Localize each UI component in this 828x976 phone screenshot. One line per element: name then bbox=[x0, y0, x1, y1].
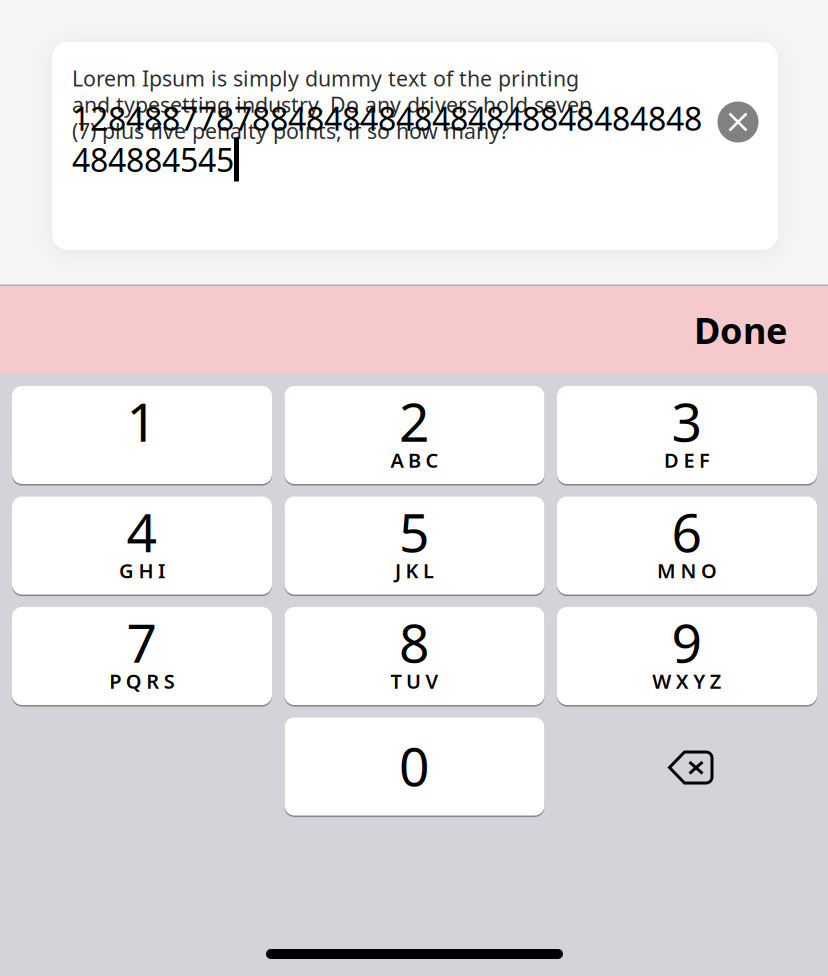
button[interactable]: 4 bbox=[12, 496, 272, 594]
staticText: 2 bbox=[399, 386, 430, 456]
staticText: GHI bbox=[119, 557, 165, 584]
staticText: PQRS bbox=[109, 668, 175, 694]
staticText: 7 bbox=[126, 607, 157, 677]
staticText: JKL bbox=[395, 557, 434, 584]
button[interactable]: 1 bbox=[12, 386, 272, 484]
button[interactable]: Clear text bbox=[706, 90, 770, 154]
button[interactable]: 7 bbox=[12, 607, 272, 705]
staticText: WXYZ bbox=[652, 668, 722, 694]
staticText: 8 bbox=[399, 607, 430, 677]
staticText: MNO bbox=[657, 557, 717, 584]
button[interactable]: 6 bbox=[557, 496, 817, 594]
staticText: 4 bbox=[126, 496, 157, 567]
staticText: 9 bbox=[671, 607, 702, 677]
staticText: 12848877878848484848484848848484848 bbox=[72, 97, 702, 139]
staticText: 3 bbox=[671, 386, 702, 456]
staticText: 6 bbox=[671, 496, 702, 567]
staticText: Done bbox=[694, 306, 787, 354]
staticText: TUV bbox=[390, 668, 438, 694]
button[interactable]: 5 bbox=[284, 496, 544, 594]
button[interactable]: Delete bbox=[557, 717, 817, 815]
staticText: 5 bbox=[399, 496, 430, 567]
button[interactable]: 8 bbox=[284, 607, 544, 705]
staticText: 484884545 bbox=[72, 138, 234, 181]
button[interactable]: 9 bbox=[557, 607, 817, 705]
staticText: DEF bbox=[664, 447, 710, 473]
button[interactable]: 3 bbox=[557, 386, 817, 484]
button[interactable]: Done bbox=[672, 290, 809, 370]
staticText: 1 bbox=[126, 386, 157, 456]
staticText: ABC bbox=[390, 447, 438, 473]
button[interactable]: 2 bbox=[284, 386, 544, 484]
button[interactable]: 0 bbox=[284, 717, 544, 815]
staticText: 0 bbox=[399, 730, 430, 801]
staticText: Lorem Ipsum is simply dummy text of the … bbox=[72, 64, 592, 145]
